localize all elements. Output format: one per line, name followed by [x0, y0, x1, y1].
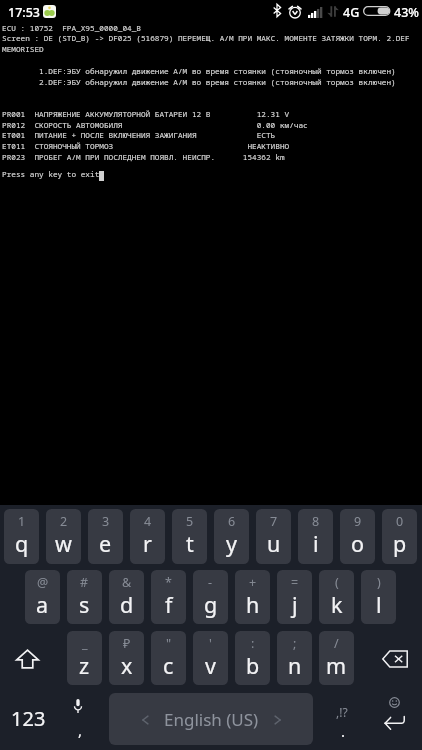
staticText: b [246, 651, 260, 680]
button[interactable]: = [277, 570, 312, 624]
button[interactable]: - [193, 570, 228, 624]
button[interactable]: ,!? [320, 692, 364, 745]
staticText: x [121, 651, 133, 680]
button[interactable]: ' [193, 631, 228, 685]
staticText: u [267, 529, 281, 558]
button[interactable]: " [151, 631, 186, 685]
button[interactable]: ( [319, 570, 354, 624]
button[interactable]: 3 [88, 509, 123, 564]
button[interactable]: : [235, 631, 270, 685]
staticText: 43% [394, 4, 419, 21]
staticText: w [55, 529, 72, 558]
button[interactable]: ₽ [109, 631, 144, 685]
button[interactable]: + [235, 570, 270, 624]
button[interactable]: Enter [372, 692, 418, 745]
button[interactable]: 123 [0, 692, 56, 745]
button[interactable]: 4 [130, 509, 165, 564]
staticText: c [163, 651, 174, 680]
button[interactable]: 1 [4, 509, 39, 564]
staticText: m [326, 651, 347, 680]
staticText: PR001 НАПРЯЖЕНИЕ АККУМУЛЯТОРНОЙ БАТАРЕИ … [2, 109, 290, 120]
staticText: - [208, 574, 213, 591]
button[interactable]: ; [277, 631, 312, 685]
button[interactable]: & [109, 570, 144, 624]
staticText: i [313, 529, 319, 558]
staticText: 6 [228, 513, 236, 530]
button[interactable]: 0 [382, 509, 417, 564]
staticText: ET011 СТОЯНОЧНЫЙ ТОРМОЗ НЕАКТИВНО [2, 141, 290, 152]
staticText: 17:53 [8, 4, 41, 21]
button[interactable]: 2 [46, 509, 81, 564]
staticText: & [122, 574, 132, 591]
button[interactable]: 7 [256, 509, 291, 564]
staticText: = [291, 574, 299, 591]
button[interactable]: 9 [340, 509, 375, 564]
button[interactable]: @ [25, 570, 60, 624]
staticText: g [204, 590, 218, 619]
staticText: : [251, 635, 255, 652]
staticText: # [80, 574, 89, 591]
staticText: * [165, 574, 172, 591]
staticText: 5 [186, 513, 194, 530]
staticText: 9 [354, 513, 362, 530]
staticText: s [79, 590, 90, 619]
button[interactable]: 6 [214, 509, 249, 564]
staticText: _ [82, 635, 88, 652]
staticText: 4 [144, 513, 152, 530]
button[interactable]: / [319, 631, 354, 685]
staticText: 8 [312, 513, 320, 530]
staticText: ECU : 10752 FPA_X95_0000_04_B [2, 23, 141, 34]
staticText: / [334, 635, 339, 652]
button[interactable]: ) [361, 570, 396, 624]
staticText: y [226, 529, 237, 558]
staticText: 2.DEF:ЭБУ обнаружил движение А/М во врем… [2, 77, 396, 88]
staticText: j [292, 590, 298, 619]
staticText: n [288, 651, 302, 680]
staticText: , [78, 720, 83, 740]
staticText: ' [209, 635, 212, 652]
button[interactable]: English (US) [109, 693, 313, 745]
button[interactable]: 8 [298, 509, 333, 564]
staticText: ( [335, 574, 339, 591]
staticText: PR023 ПРОБЕГ А/М ПРИ ПОСЛЕДНЕМ ПОЯВЛ. НЕ… [2, 152, 285, 163]
staticText: 4G [343, 4, 360, 21]
staticText: 123 [11, 705, 46, 732]
staticText: 2 [60, 513, 68, 530]
staticText: p [393, 529, 407, 558]
staticText: e [99, 529, 112, 558]
button[interactable]: Voice input [58, 692, 102, 745]
staticText: PR012 СКОРОСТЬ АВТОМОБИЛЯ 0.00 км/час [2, 120, 308, 131]
button[interactable]: Backspace [363, 631, 418, 685]
staticText: + [249, 574, 257, 591]
button[interactable]: _ [67, 631, 102, 685]
staticText: . [341, 721, 346, 741]
staticText: Screen : DE (STD_B) -> DF025 (516879) ПЕ… [2, 33, 410, 44]
staticText: r [143, 529, 152, 558]
button[interactable]: 5 [172, 509, 207, 564]
staticText: q [15, 529, 29, 558]
staticText: f [165, 590, 173, 619]
staticText: 1 [18, 513, 26, 530]
button[interactable]: * [151, 570, 186, 624]
staticText: 0 [396, 513, 404, 530]
staticText: ₽ [123, 635, 131, 652]
staticText: 3 [102, 513, 110, 530]
staticText: l [376, 590, 382, 619]
staticText: English (US) [164, 708, 259, 731]
staticText: " [166, 635, 172, 652]
staticText: t [186, 529, 194, 558]
staticText: 7 [270, 513, 278, 530]
staticText: Press any key to exit [2, 169, 100, 180]
staticText: o [351, 529, 365, 558]
staticText: ,!? [336, 704, 348, 720]
staticText: z [79, 651, 90, 680]
button[interactable]: # [67, 570, 102, 624]
staticText: k [331, 590, 343, 619]
staticText: MEMORISED [2, 44, 44, 55]
staticText: a [36, 590, 49, 619]
staticText: v [205, 651, 216, 680]
button[interactable]: Shift [0, 631, 61, 685]
staticText: ET001 ПИТАНИЕ + ПОСЛЕ ВКЛЮЧЕНИЯ ЗАЖИГАНИ… [2, 130, 276, 141]
staticText: h [246, 590, 260, 619]
staticText: d [120, 590, 134, 619]
